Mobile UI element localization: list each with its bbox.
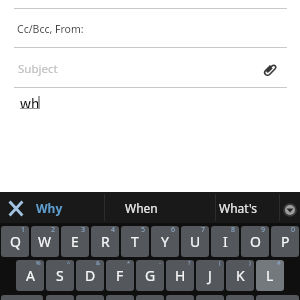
button[interactable]	[76, 295, 104, 300]
staticText: A	[26, 266, 35, 285]
button[interactable]	[2, 194, 29, 221]
button[interactable]: Cc/Bcc, From:	[0, 9, 300, 47]
button[interactable]	[166, 295, 194, 300]
button[interactable]: F	[106, 260, 134, 291]
button[interactable]: L	[256, 260, 284, 291]
button[interactable]: E	[61, 226, 89, 257]
staticText: K	[236, 266, 245, 285]
button[interactable]: I	[211, 226, 239, 257]
button[interactable]: H	[166, 260, 194, 291]
button[interactable]: S	[46, 260, 74, 291]
staticText: O	[250, 232, 261, 251]
staticText: -	[159, 260, 161, 266]
staticText: 9	[261, 226, 266, 235]
staticText: J	[208, 266, 212, 285]
staticText: T	[131, 232, 139, 251]
button[interactable]: O	[241, 226, 269, 257]
staticText: F	[116, 266, 124, 285]
staticText: Why	[36, 200, 63, 216]
button[interactable]: A	[16, 260, 44, 291]
button[interactable]: T	[121, 226, 149, 257]
button[interactable]: J	[196, 260, 224, 291]
button[interactable]: Subject	[0, 48, 300, 87]
staticText: Cc/Bcc, From:	[17, 22, 84, 36]
button[interactable]: Why	[25, 192, 73, 223]
staticText: When	[125, 200, 158, 216]
button[interactable]	[256, 295, 299, 300]
staticText: 5	[141, 226, 146, 235]
staticText: I	[223, 232, 228, 251]
staticText: 1	[21, 226, 26, 235]
staticText: 6	[171, 226, 176, 235]
button[interactable]: U	[181, 226, 209, 257]
staticText: )	[249, 260, 251, 266]
staticText: ?	[188, 260, 191, 266]
button[interactable]: wh	[0, 88, 300, 192]
staticText: 8	[231, 226, 236, 235]
staticText: ^	[67, 260, 71, 266]
staticText: U	[190, 232, 201, 251]
button[interactable]	[258, 58, 282, 82]
staticText: W	[38, 232, 52, 251]
staticText: %	[36, 260, 41, 266]
staticText: L	[266, 266, 274, 285]
button[interactable]: W	[31, 226, 59, 257]
button[interactable]	[280, 200, 299, 219]
staticText: G	[145, 266, 156, 285]
button[interactable]: Q	[1, 226, 29, 257]
staticText: 0	[291, 226, 296, 235]
staticText: wh	[20, 95, 40, 113]
button[interactable]	[1, 295, 43, 300]
button[interactable]: When	[105, 192, 177, 223]
staticText: E	[71, 232, 79, 251]
staticText: Y	[161, 232, 169, 251]
staticText: 7	[201, 226, 206, 235]
staticText: &	[96, 260, 101, 266]
button[interactable]	[136, 295, 164, 300]
button[interactable]: D	[76, 260, 104, 291]
staticText: 3	[81, 226, 86, 235]
button[interactable]: R	[91, 226, 119, 257]
staticText: (	[219, 260, 221, 266]
button[interactable]	[46, 295, 74, 300]
button[interactable]	[226, 295, 254, 300]
staticText: Q	[10, 232, 21, 251]
button[interactable]: K	[226, 260, 254, 291]
button[interactable]: What's	[208, 192, 268, 223]
staticText: D	[85, 266, 96, 285]
staticText: #	[277, 260, 281, 266]
button[interactable]: P	[271, 226, 299, 257]
button[interactable]: G	[136, 260, 164, 291]
staticText: *	[127, 260, 131, 266]
staticText: H	[175, 266, 186, 285]
button[interactable]	[106, 295, 134, 300]
staticText: S	[56, 266, 64, 285]
staticText: 4	[111, 226, 116, 235]
button[interactable]: Y	[151, 226, 179, 257]
staticText: 2	[51, 226, 56, 235]
staticText: What's	[219, 200, 257, 216]
staticText: P	[281, 232, 290, 251]
staticText: Subject	[18, 61, 58, 77]
staticText: R	[101, 232, 110, 251]
button[interactable]	[196, 295, 224, 300]
